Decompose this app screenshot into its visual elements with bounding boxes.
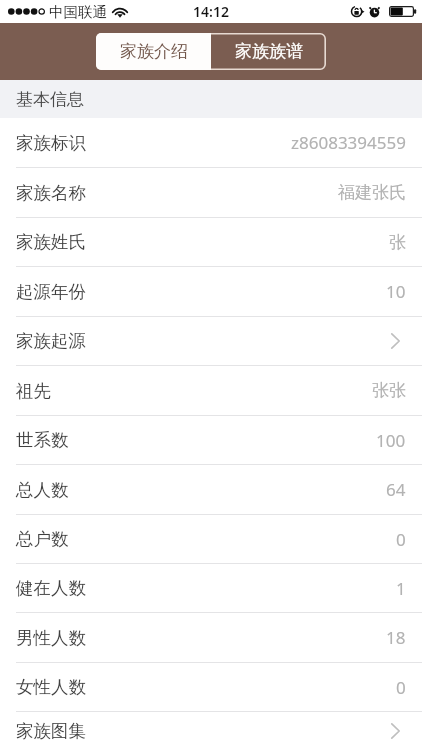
other: Rotation lock: [351, 5, 365, 18]
button[interactable]: 家族起源: [0, 317, 422, 365]
staticText: 64: [386, 478, 406, 501]
staticText: 起源年份: [16, 281, 86, 303]
staticText: 世系数: [16, 429, 69, 451]
button[interactable]: 起源年份: [0, 267, 422, 316]
button[interactable]: 祖先: [0, 366, 422, 415]
button[interactable]: 世系数: [0, 416, 422, 464]
staticText: 家族标识: [16, 132, 86, 154]
staticText: 0: [396, 528, 406, 551]
staticText: 0: [396, 676, 406, 699]
staticText: 家族起源: [16, 330, 86, 352]
button[interactable]: 家族名称: [0, 168, 422, 217]
other: Alarm: [368, 5, 381, 18]
staticText: 福建张氏: [338, 182, 406, 203]
staticText: 100: [376, 429, 406, 452]
staticText: 张: [389, 232, 406, 253]
staticText: 总户数: [16, 528, 69, 550]
staticText: 基本信息: [16, 89, 84, 110]
staticText: 1: [396, 577, 406, 600]
other: Battery: [389, 6, 416, 17]
button[interactable]: 家族介绍: [96, 33, 211, 70]
button[interactable]: 家族族谱: [211, 33, 326, 70]
button[interactable]: 家族姓氏: [0, 218, 422, 266]
staticText: 18: [386, 626, 406, 649]
staticText: 张张: [372, 380, 406, 401]
button[interactable]: 总人数: [0, 465, 422, 514]
button[interactable]: 女性人数: [0, 663, 422, 711]
staticText: 男性人数: [16, 627, 86, 649]
staticText: 14:12: [193, 2, 229, 21]
staticText: 家族介绍: [120, 41, 188, 62]
button[interactable]: 男性人数: [0, 613, 422, 662]
button[interactable]: 总户数: [0, 515, 422, 563]
button[interactable]: 家族标识: [0, 118, 422, 167]
staticText: 家族族谱: [235, 41, 303, 62]
staticText: 健在人数: [16, 577, 86, 599]
staticText: 总人数: [16, 479, 69, 501]
staticText: z86083394559: [291, 131, 406, 154]
button[interactable]: 健在人数: [0, 564, 422, 612]
staticText: 家族图集: [16, 720, 86, 742]
staticText: 家族姓氏: [16, 231, 86, 253]
staticText: 女性人数: [16, 676, 86, 698]
button[interactable]: 家族图集: [0, 712, 422, 750]
staticText: 10: [386, 280, 406, 303]
staticText: 中国联通: [49, 3, 107, 21]
staticText: 家族名称: [16, 182, 86, 204]
staticText: 祖先: [16, 380, 51, 402]
